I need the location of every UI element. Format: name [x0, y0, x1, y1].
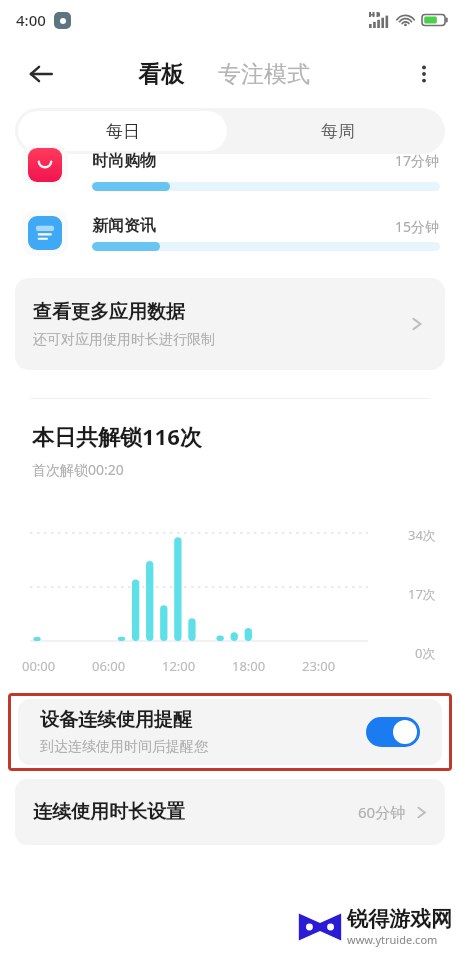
staticText: 15分钟 [395, 217, 440, 236]
button[interactable]: 查看更多应用数据 [15, 278, 445, 370]
staticText: 4:00 [16, 10, 46, 30]
button[interactable]: 设备连续使用提醒 [18, 699, 442, 765]
staticText: 0次 [415, 644, 436, 662]
staticText: 06:00 [92, 657, 162, 675]
staticText: 17次 [408, 585, 436, 603]
staticText: 60分钟 [358, 802, 406, 822]
staticText: 到达连续使用时间后提醒您 [40, 738, 208, 756]
staticText: 查看更多应用数据 [33, 300, 185, 324]
button[interactable]: 看板 [134, 60, 188, 89]
staticText: 时尚购物 [92, 151, 156, 171]
staticText: 新闻资讯 [92, 216, 156, 236]
button[interactable]: Device usage reminder toggle, on [366, 717, 420, 747]
button[interactable]: 时尚购物 [0, 160, 460, 202]
button[interactable]: 连续使用时长设置 [15, 779, 445, 845]
staticText: 00:00 [22, 657, 92, 675]
button[interactable]: 新闻资讯 [0, 202, 460, 264]
staticText: 34次 [408, 526, 436, 544]
button[interactable]: 每日 [18, 111, 227, 151]
staticText: 连续使用时长设置 [33, 800, 185, 824]
button[interactable]: 专注模式 [214, 60, 314, 89]
staticText: 本日共解锁116次 [32, 421, 202, 451]
staticText: 每周 [321, 121, 355, 142]
staticText: 设备连续使用提醒 [40, 708, 192, 732]
button[interactable]: Back [18, 51, 64, 97]
staticText: 17分钟 [395, 151, 440, 170]
button[interactable]: More options [402, 52, 446, 96]
staticText: 还可对应用使用时长进行限制 [33, 331, 215, 349]
staticText: 23:00 [302, 657, 372, 675]
staticText: 首次解锁00:20 [32, 460, 124, 479]
button[interactable]: 每周 [230, 108, 445, 154]
staticText: 专注模式 [218, 60, 310, 89]
staticText: 18:00 [232, 657, 302, 675]
staticText: 每日 [106, 121, 140, 142]
staticText: 锐得游戏网 [347, 906, 452, 932]
staticText: www.ytruide.com [347, 932, 438, 947]
staticText: 12:00 [162, 657, 232, 675]
staticText: 看板 [138, 60, 184, 89]
